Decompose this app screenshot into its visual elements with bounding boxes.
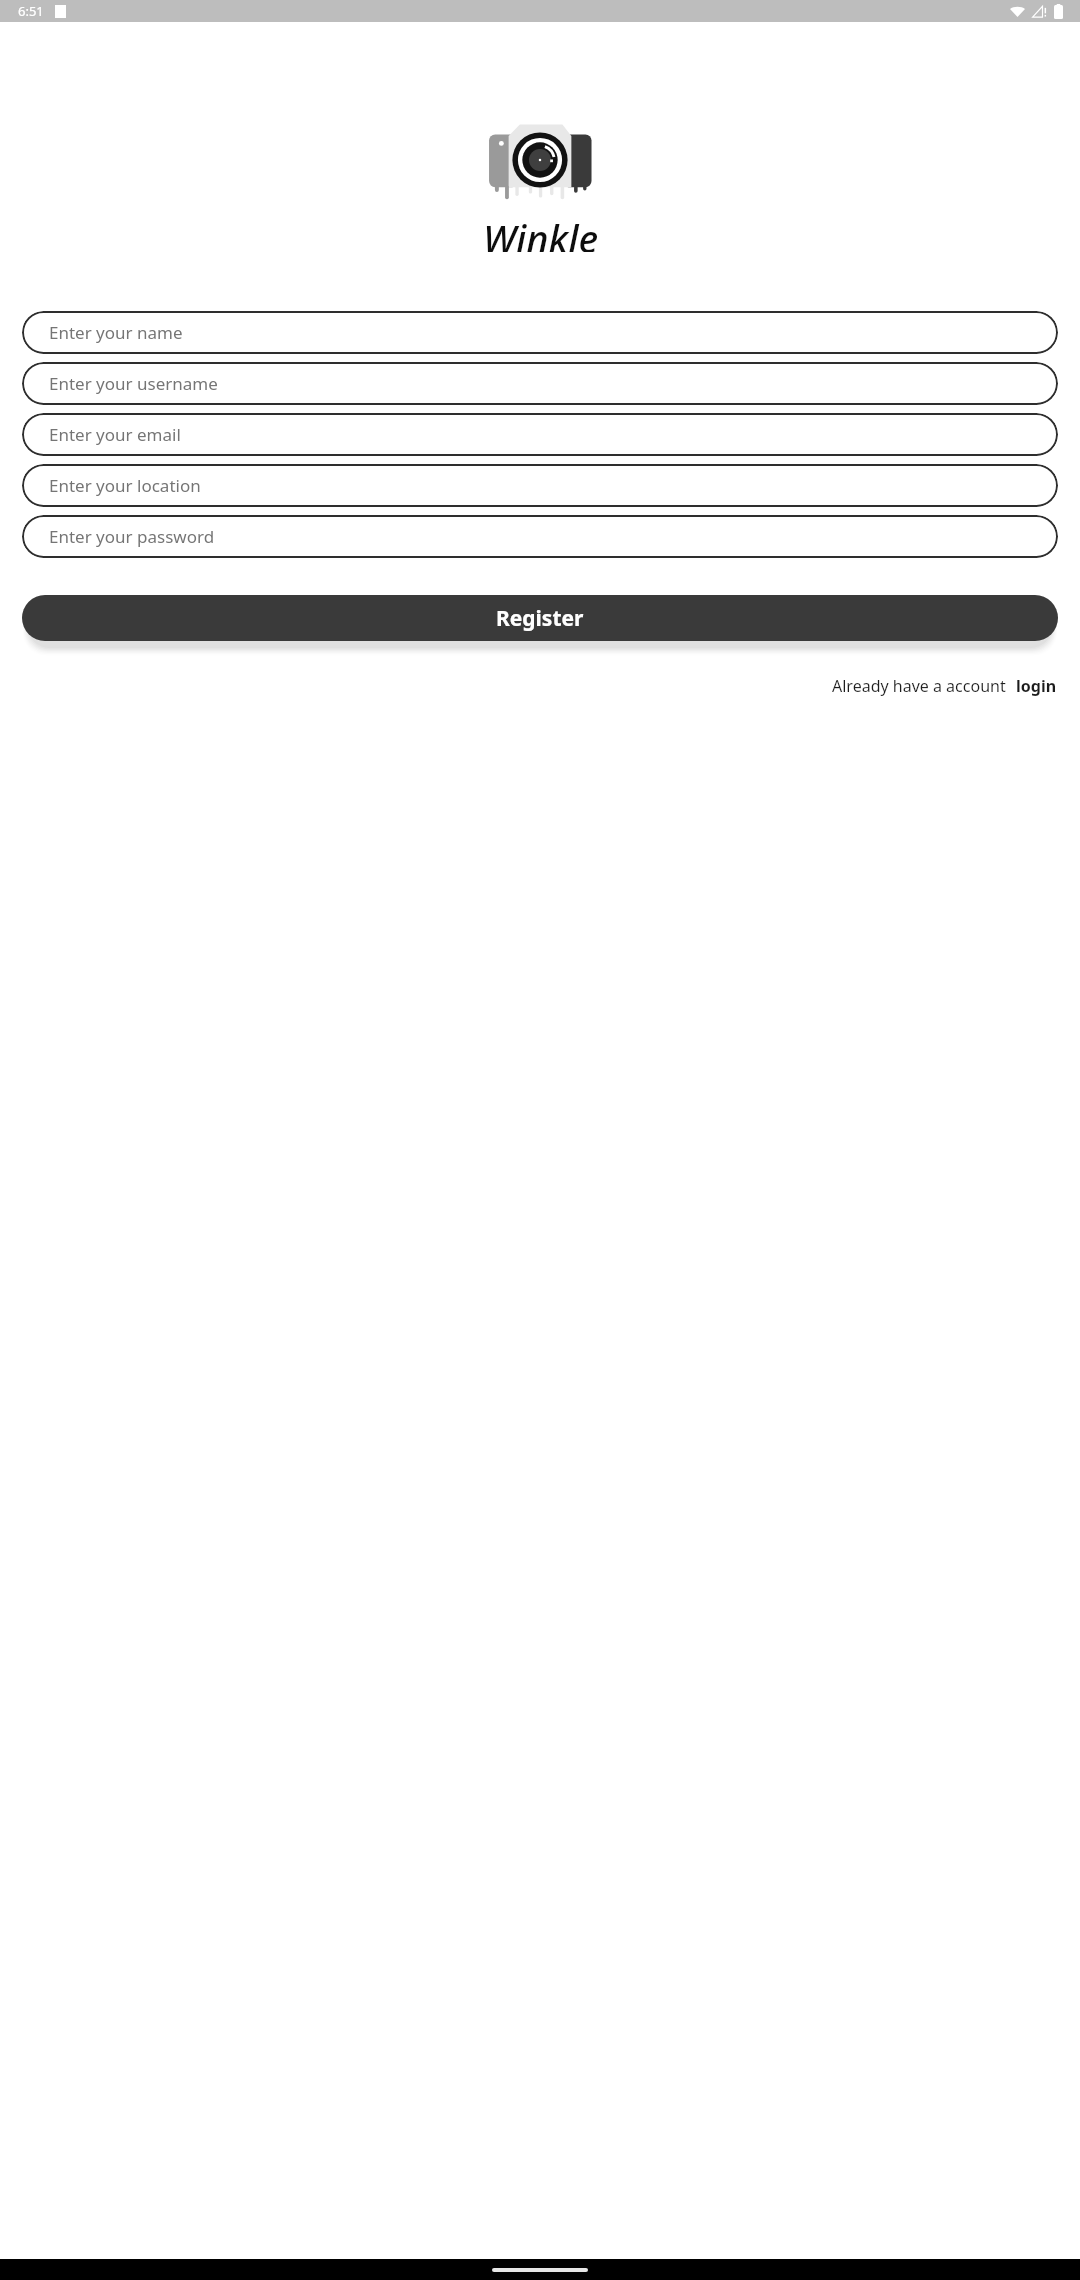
staticText: Enter your email [49,423,181,446]
staticText: Enter your password [49,525,215,548]
button[interactable]: login [1015,673,1058,699]
button[interactable]: Enter your name [22,311,1058,354]
button[interactable]: Enter your username [22,362,1058,405]
staticText: 6:51 [18,2,44,20]
staticText: Already have a account [832,675,1006,697]
button[interactable]: Enter your password [22,515,1058,558]
staticText: Enter your name [49,321,183,344]
staticText: login [1016,675,1057,697]
button[interactable]: Enter your location [22,464,1058,507]
button[interactable]: Enter your email [22,413,1058,456]
button[interactable]: Register [22,595,1058,641]
staticText: Winkle [483,212,598,252]
staticText: Register [496,604,584,633]
staticText: Enter your location [49,474,201,497]
staticText: Enter your username [49,372,218,395]
